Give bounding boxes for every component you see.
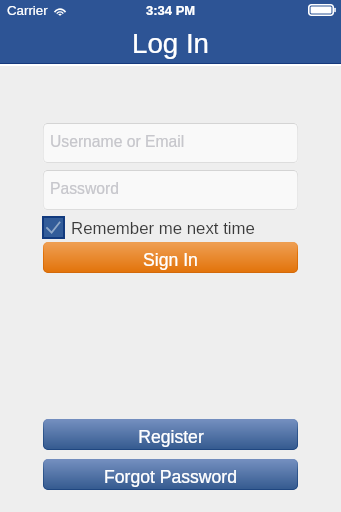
staticText: Carrier: [7, 3, 48, 18]
staticText: Register: [138, 427, 204, 447]
button[interactable]: Password: [43, 170, 298, 210]
button[interactable]: Forgot Password: [43, 459, 298, 490]
other: Battery full: [308, 4, 336, 16]
button[interactable]: Remember me next time: [43, 217, 298, 238]
staticText: 3:34 PM: [146, 3, 196, 18]
other: Wi-Fi: [53, 5, 67, 16]
button[interactable]: Username or Email: [43, 123, 298, 163]
staticText: Username or Email: [50, 133, 185, 151]
staticText: Remember me next time: [71, 219, 255, 238]
button[interactable]: Sign In: [43, 242, 298, 273]
staticText: Forgot Password: [104, 467, 237, 487]
staticText: Log In: [132, 28, 209, 59]
staticText: Sign In: [143, 250, 198, 270]
button[interactable]: Register: [43, 419, 298, 450]
button[interactable]: Remember me next time: [43, 217, 64, 238]
staticText: Password: [50, 180, 119, 198]
